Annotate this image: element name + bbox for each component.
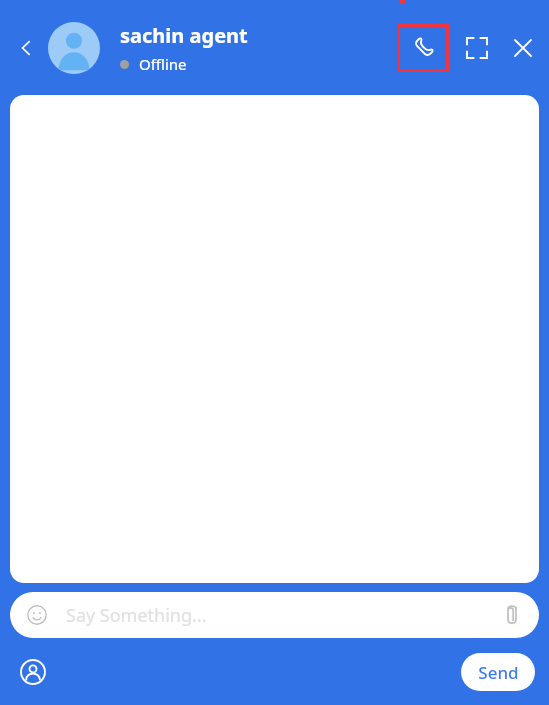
- staticText: Send: [478, 661, 519, 684]
- staticText: sachin agent: [120, 22, 248, 49]
- staticText: Offline: [139, 54, 187, 74]
- button[interactable]: Send: [461, 653, 535, 691]
- staticText: Say Something...: [66, 603, 497, 628]
- button[interactable]: Account: [14, 653, 52, 691]
- button[interactable]: Emoji: [22, 600, 52, 630]
- button[interactable]: Close: [503, 28, 543, 68]
- button[interactable]: Call: [397, 24, 449, 72]
- button[interactable]: Attach file: [497, 600, 527, 630]
- button[interactable]: Fullscreen: [457, 28, 497, 68]
- button[interactable]: Back: [8, 30, 44, 66]
- button[interactable]: Emoji: [10, 592, 539, 638]
